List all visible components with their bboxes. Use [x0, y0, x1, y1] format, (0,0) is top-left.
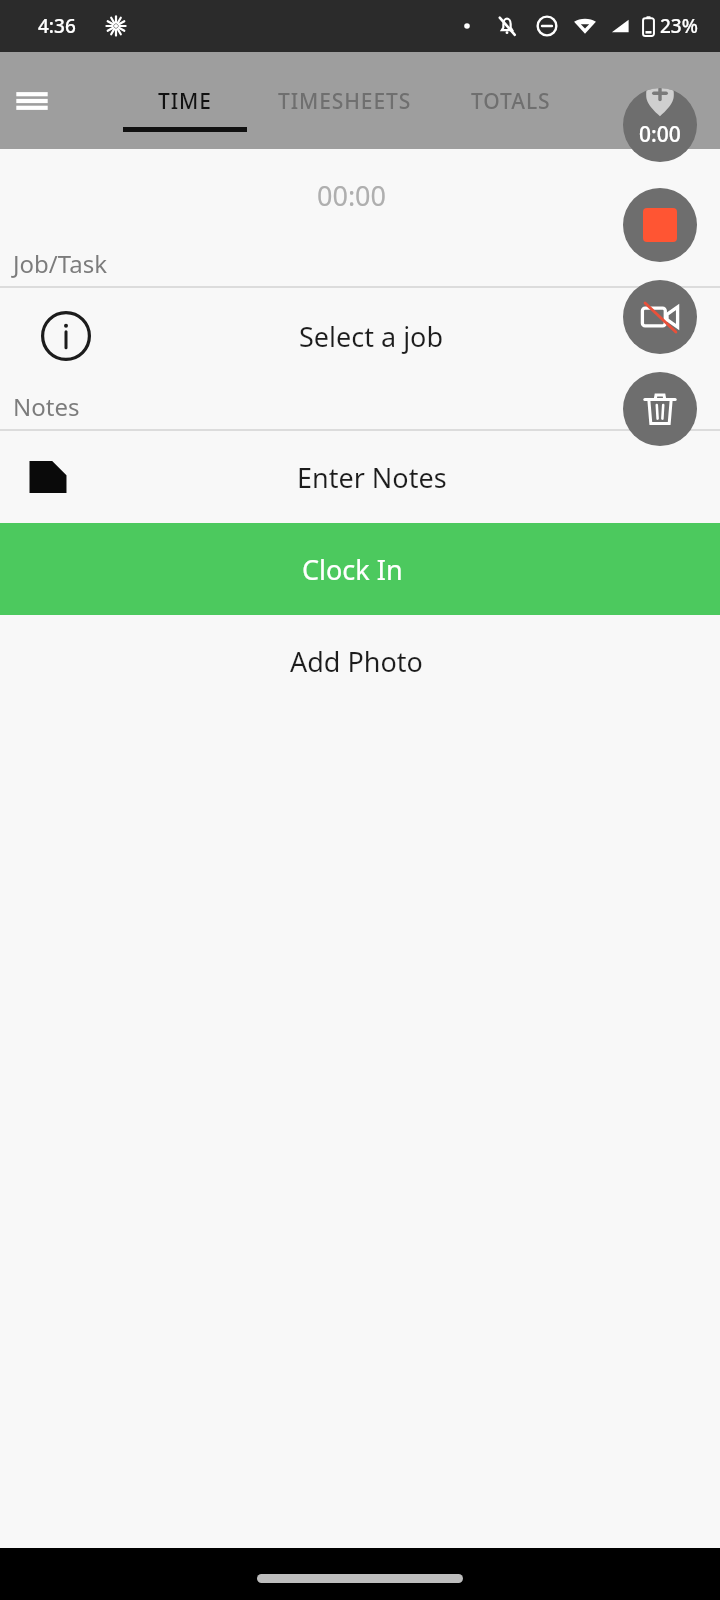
button[interactable]: TIME: [123, 52, 247, 149]
staticText: TIMESHEETS: [278, 87, 412, 116]
staticText: TOTALS: [471, 87, 551, 116]
button[interactable]: Add Photo: [0, 615, 720, 707]
button[interactable]: Stop: [623, 188, 697, 262]
button[interactable]: Select a job: [0, 288, 720, 384]
staticText: Job/Task: [13, 247, 107, 280]
button[interactable]: TIMESHEETS: [255, 52, 435, 149]
staticText: Notes: [13, 390, 80, 423]
button[interactable]: Delete: [623, 372, 697, 446]
button[interactable]: Add location: [623, 88, 697, 162]
button[interactable]: TOTALS: [443, 52, 578, 149]
staticText: Add Photo: [290, 643, 423, 680]
staticText: Select a job: [299, 318, 444, 355]
staticText: Clock In: [302, 551, 403, 588]
staticText: 23%: [660, 13, 698, 39]
button[interactable]: Enter Notes: [0, 431, 720, 523]
button[interactable]: Clock In: [0, 523, 720, 615]
staticText: 4:36: [38, 13, 76, 39]
button[interactable]: Menu: [0, 69, 64, 133]
staticText: 00:00: [317, 177, 387, 214]
button[interactable]: Video off: [623, 280, 697, 354]
staticText: Enter Notes: [297, 459, 447, 496]
staticText: TIME: [158, 87, 212, 116]
staticText: 0:00: [639, 120, 681, 149]
